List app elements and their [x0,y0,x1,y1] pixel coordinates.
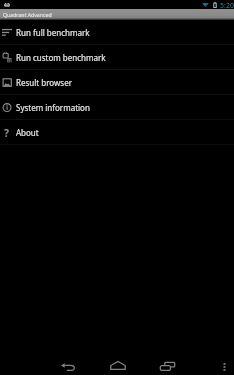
button[interactable]: System information [0,95,234,120]
staticText: 5:20 [220,1,234,10]
staticText: Run full benchmark [16,27,90,38]
staticText: Run custom benchmark [16,52,106,63]
staticText: System information [16,102,90,113]
button[interactable]: Run custom benchmark [0,45,234,70]
button[interactable]: Home [104,356,131,375]
button[interactable]: ? [0,120,234,145]
staticText: About [16,127,39,138]
staticText: Quadrant Advanced [3,11,52,18]
button[interactable]: Result browser [0,70,234,95]
staticText: ? [4,126,10,137]
button[interactable]: Run full benchmark [0,20,234,45]
button[interactable]: Back [54,357,81,375]
staticText: Result browser [16,77,72,88]
button[interactable]: More options [214,357,234,375]
button[interactable]: Recent apps [154,357,181,375]
